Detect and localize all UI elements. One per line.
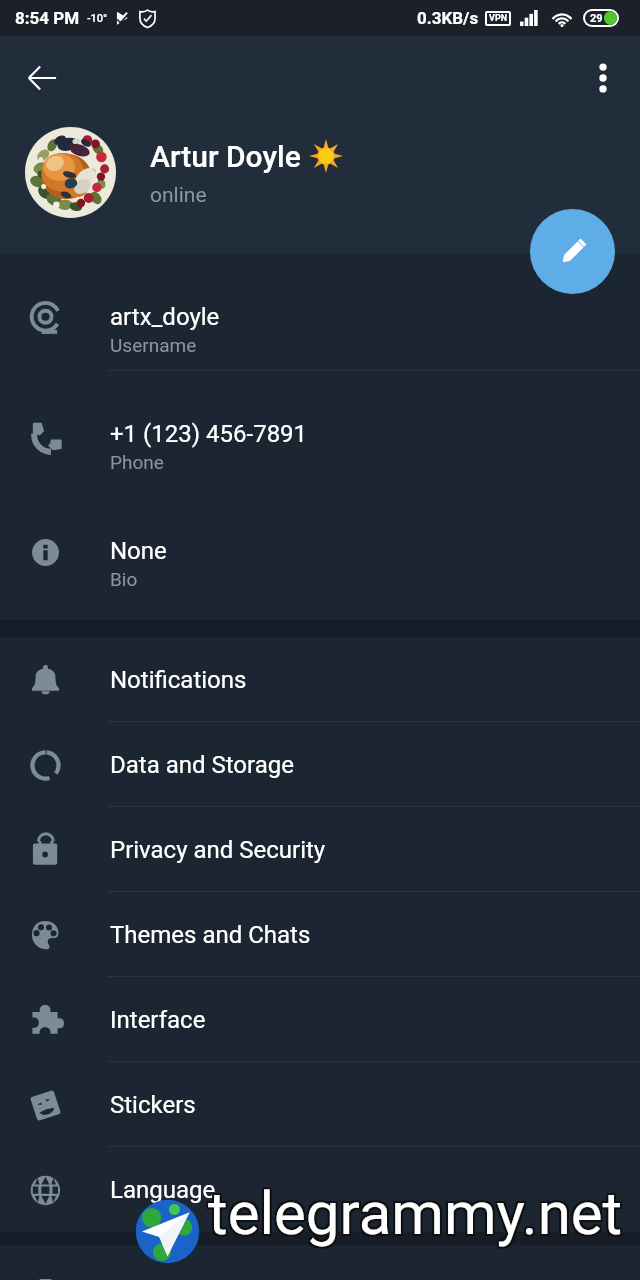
staticText: telegrammy.net [210,1180,625,1250]
staticText: telegrammy.net [210,1178,625,1248]
staticText: Phone [110,451,164,473]
button[interactable]: Privacy and Security [0,807,640,892]
button[interactable]: Interface [0,977,640,1062]
staticText: Themes and Chats [110,921,311,949]
button[interactable]: +1 (123) 456-7891 [0,371,640,488]
staticText: telegrammy.net [208,1178,623,1248]
staticText: telegrammy.net [206,1176,621,1246]
staticText: telegrammy.net [206,1180,621,1250]
button[interactable]: Notifications [0,637,640,722]
staticText: telegrammy.net [210,1176,625,1246]
staticText: telegrammy.net [206,1178,621,1248]
button[interactable]: Language [0,1147,640,1232]
button[interactable]: Data and Storage [0,722,640,807]
staticText: online [150,183,207,208]
staticText: telegrammy.net [208,1176,623,1246]
staticText: Privacy and Security [110,836,326,864]
button[interactable]: None [0,488,640,605]
staticText: Data and Storage [110,751,294,779]
button[interactable]: Edit profile [530,209,615,294]
button[interactable] [0,1245,640,1280]
button[interactable]: Themes and Chats [0,892,640,977]
staticText: VPN [489,13,508,24]
staticText: Notifications [110,666,247,694]
staticText: Bio [110,568,138,590]
staticText: telegrammy.net [208,1180,623,1250]
staticText: 0.3KB/s [417,8,479,28]
staticText: None [110,537,167,565]
staticText: Stickers [110,1091,196,1119]
staticText: 29 [590,12,603,25]
button[interactable]: artx_doyle [0,254,640,371]
staticText: -10° [87,12,108,25]
staticText: 8:54 PM [15,8,80,28]
staticText: artx_doyle [110,303,220,331]
staticText: +1 (123) 456-7891 [110,420,308,448]
staticText: Interface [110,1006,206,1034]
staticText: Artur Doyle [150,139,301,174]
button[interactable]: Back [18,54,66,102]
staticText: Username [110,334,197,356]
button[interactable]: Stickers [0,1062,640,1147]
staticText: Language [110,1176,216,1204]
button[interactable]: More options [579,54,627,102]
